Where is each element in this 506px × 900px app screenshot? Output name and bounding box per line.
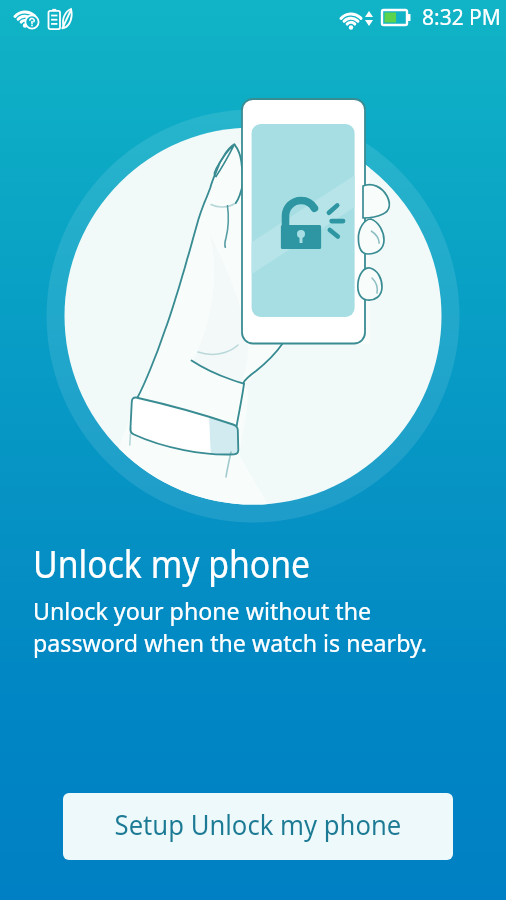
- button[interactable]: Setup Unlock my phone: [63, 793, 453, 860]
- staticText: Setup Unlock my phone: [115, 806, 401, 843]
- staticText: Unlock your phone without the password w…: [33, 595, 428, 659]
- staticText: 8:32 PM: [422, 3, 501, 32]
- staticText: Unlock my phone: [33, 538, 310, 589]
